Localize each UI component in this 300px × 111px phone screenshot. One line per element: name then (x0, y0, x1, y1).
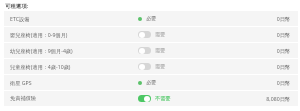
button[interactable]: 嬰兒座椅(適用：0-9個月) (4, 27, 298, 42)
staticText: 幼兒座椅(適用：9個月-4歲) (10, 47, 120, 54)
button[interactable]: 幼兒座椅(適用：9個月-4歲) 需要 (138, 47, 200, 54)
staticText: 必要 (146, 15, 157, 22)
button[interactable]: ETC設備 必要 (138, 15, 200, 22)
staticText: 嬰兒座椅(適用：0-9個月) (10, 31, 120, 38)
staticText: 需要 (155, 31, 166, 38)
staticText: 兒童座椅(適用：4歲-10歲) (10, 63, 120, 70)
staticText: 0日幣 (250, 31, 290, 38)
staticText: 0日幣 (250, 47, 290, 54)
staticText: 需要 (155, 63, 166, 70)
button[interactable]: ETC設備 (4, 11, 298, 26)
button[interactable]: 免責補償險 不需要 (138, 95, 200, 102)
staticText: 免責補償險 (10, 95, 120, 102)
staticText: ETC設備 (10, 15, 120, 22)
button[interactable]: 嬰兒座椅(適用：0-9個月) 需要 (138, 31, 200, 38)
staticText: 需要 (155, 47, 166, 54)
button[interactable]: 兒童座椅(適用：4歲-10歲) 需要 (138, 63, 200, 70)
staticText: 可租選項: (5, 2, 29, 9)
button[interactable]: 免責補償險 (4, 91, 298, 106)
staticText: 8,080日幣 (250, 95, 290, 102)
button[interactable]: 兒童座椅(適用：4歲-10歲) (4, 59, 298, 74)
staticText: 不需要 (155, 95, 171, 102)
button[interactable]: 衛星 GPS (4, 75, 298, 90)
staticText: 0日幣 (250, 15, 290, 22)
staticText: 必要 (146, 79, 157, 86)
button[interactable]: 幼兒座椅(適用：9個月-4歲) (4, 43, 298, 58)
button[interactable]: 衛星 GPS 必要 (138, 79, 200, 86)
staticText: 0日幣 (250, 79, 290, 86)
staticText: 衛星 GPS (10, 79, 120, 86)
staticText: 0日幣 (250, 63, 290, 70)
